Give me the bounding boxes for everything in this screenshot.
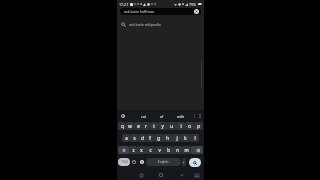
button[interactable]: l <box>190 134 199 142</box>
button[interactable]: n <box>173 146 182 154</box>
staticText: s <box>133 135 136 141</box>
button[interactable]: t <box>150 122 158 130</box>
staticText: a <box>125 135 128 141</box>
staticText: r <box>145 123 147 129</box>
button[interactable]: k <box>181 134 190 142</box>
button[interactable]: ?123 <box>118 158 130 166</box>
staticText: q <box>121 123 124 129</box>
button[interactable]: ask katie hoffman <box>120 8 201 15</box>
button[interactable]: s <box>130 134 138 142</box>
button[interactable]: Home <box>156 170 166 180</box>
button[interactable]: b <box>164 146 173 154</box>
button[interactable]: English <box>146 158 181 166</box>
staticText: h <box>166 135 169 141</box>
other: More options <box>199 114 201 118</box>
staticText: x <box>140 147 143 153</box>
button[interactable]: z <box>129 146 137 154</box>
button[interactable]: j <box>172 134 181 142</box>
button[interactable]: f <box>146 134 154 142</box>
staticText: 17:27 <box>119 2 129 7</box>
button[interactable]: x <box>137 146 146 154</box>
staticText: cut <box>141 114 147 119</box>
button[interactable]: a <box>122 134 130 142</box>
button[interactable]: Emoji <box>130 158 138 166</box>
staticText: j <box>176 135 178 141</box>
staticText: ?123 <box>121 160 128 164</box>
button[interactable]: Voice input <box>138 158 146 166</box>
staticText: v <box>158 147 161 153</box>
staticText: f <box>149 135 151 141</box>
staticText: p <box>197 123 200 129</box>
staticText: y <box>161 123 164 129</box>
staticText: z <box>132 147 135 153</box>
staticText: English <box>158 160 169 164</box>
button[interactable]: Shift <box>118 146 129 154</box>
staticText: with <box>177 114 185 119</box>
staticText: of <box>160 114 164 119</box>
button[interactable]: ask katie wikipedia <box>121 19 200 29</box>
button[interactable]: v <box>155 146 164 154</box>
staticText: e <box>137 123 140 129</box>
staticText: i <box>180 123 182 129</box>
staticText: m <box>184 147 189 153</box>
button[interactable]: o <box>185 122 194 130</box>
button[interactable]: . <box>182 158 186 166</box>
staticText: g <box>157 135 160 141</box>
button[interactable]: p <box>194 122 203 130</box>
staticText: 79% <box>189 2 197 7</box>
staticText: n <box>176 147 179 153</box>
staticText: b <box>167 147 170 153</box>
button[interactable]: Switch keyboard <box>191 170 202 180</box>
button[interactable]: m <box>182 146 191 154</box>
button[interactable]: u <box>167 122 176 130</box>
button[interactable]: Hide keyboard <box>177 170 187 180</box>
button[interactable]: Backspace <box>191 146 203 154</box>
button[interactable]: Search <box>189 158 201 167</box>
staticText: d <box>141 135 144 141</box>
button[interactable]: i <box>176 122 185 130</box>
staticText: c <box>149 147 152 153</box>
button[interactable]: Recents <box>136 170 146 180</box>
other: Gboard <box>121 114 125 118</box>
button[interactable]: g <box>154 134 163 142</box>
button[interactable]: y <box>158 122 167 130</box>
staticText: . <box>183 159 185 165</box>
staticText: ask katie wikipedia <box>129 22 161 27</box>
button[interactable]: q <box>118 122 126 130</box>
staticText: ask katie hoffman <box>124 9 155 14</box>
button[interactable]: e <box>134 122 142 130</box>
button[interactable]: r <box>142 122 150 130</box>
button[interactable]: h <box>163 134 172 142</box>
staticText: t <box>153 123 155 129</box>
staticText: u <box>170 123 173 129</box>
staticText: o <box>188 123 191 129</box>
button[interactable]: w <box>126 122 134 130</box>
staticText: w <box>128 123 132 129</box>
button[interactable]: c <box>146 146 155 154</box>
staticText: l <box>194 135 196 141</box>
button[interactable]: d <box>138 134 146 142</box>
staticText: k <box>184 135 187 141</box>
